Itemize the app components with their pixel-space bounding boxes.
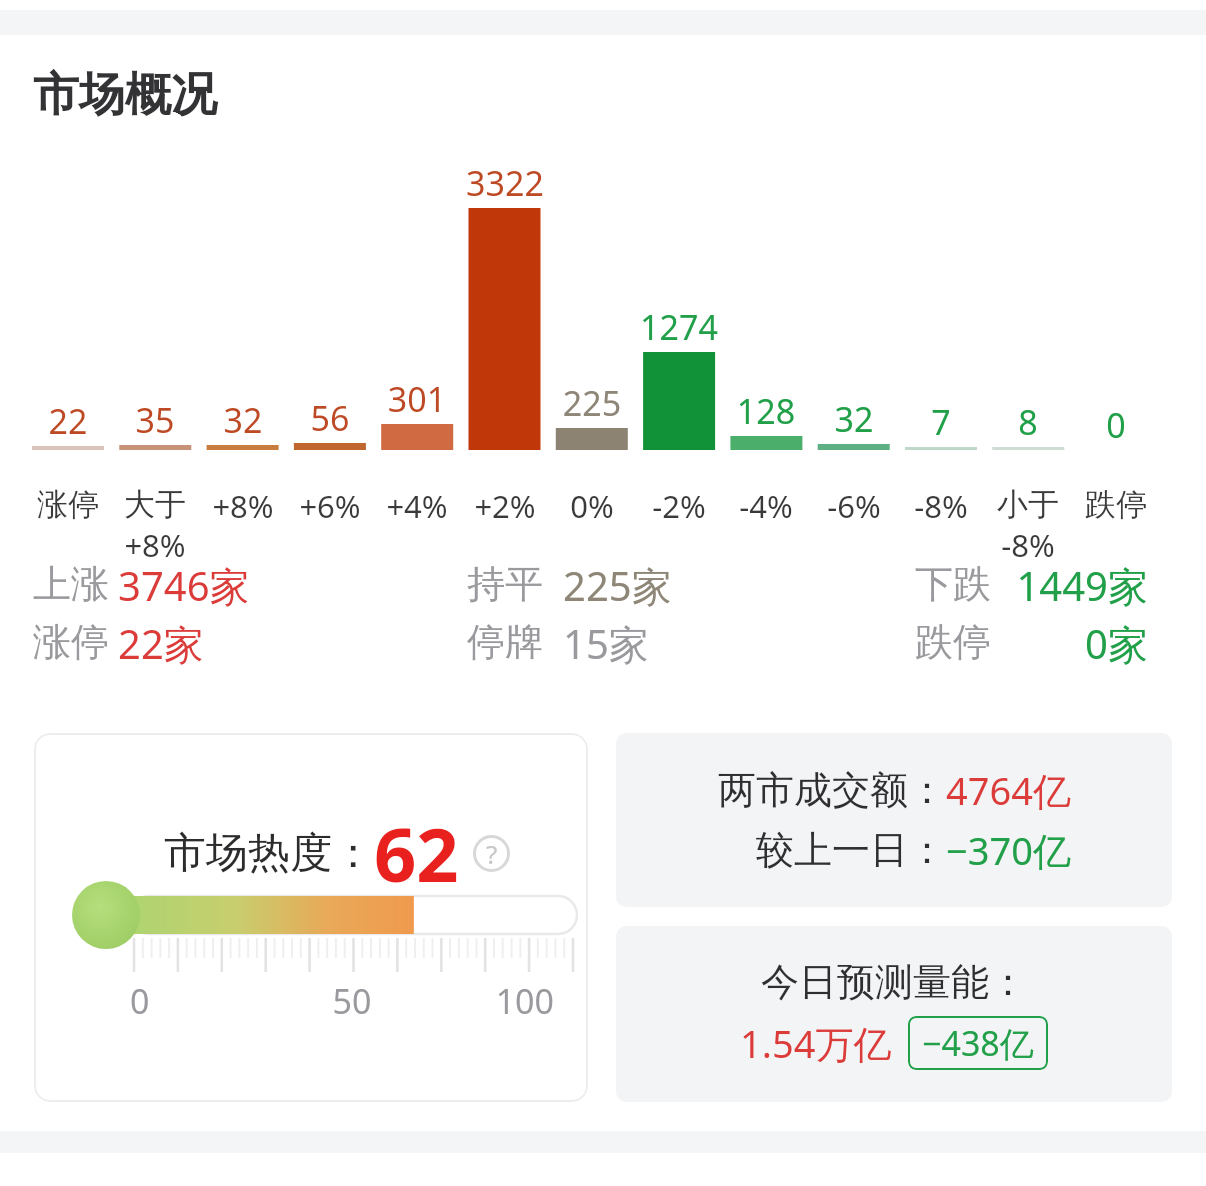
staticText: 市场概况 — [33, 66, 217, 124]
staticText: 0家 — [938, 616, 1148, 671]
staticText: 7 — [891, 399, 991, 445]
staticText: 下跌 — [915, 560, 991, 608]
staticText: 62 — [374, 803, 459, 904]
staticText: 15家 — [563, 616, 649, 671]
staticText: 0 — [130, 978, 150, 1024]
staticText: 22家 — [118, 616, 204, 671]
staticText: -8% — [1001, 524, 1055, 566]
staticText: 1274 — [629, 304, 729, 350]
staticText: 32 — [193, 397, 293, 443]
staticText: 225 — [542, 380, 642, 426]
staticText: 市场热度： — [164, 827, 374, 880]
staticText: 4764亿 — [946, 764, 1071, 816]
staticText: 100 — [474, 978, 554, 1024]
staticText: 301 — [367, 376, 467, 422]
staticText: 两市成交额： — [718, 766, 946, 814]
staticText: 1.54万亿 — [740, 1017, 892, 1069]
staticText: 8 — [978, 399, 1078, 445]
staticText: 3746家 — [118, 558, 250, 613]
staticText: 小于 — [997, 485, 1059, 524]
staticText: 停牌 — [467, 618, 543, 666]
staticText: +8% — [212, 485, 274, 527]
staticText: 0 — [1066, 402, 1166, 448]
staticText: 1449家 — [938, 558, 1148, 613]
staticText: 今日预测量能： — [761, 958, 1027, 1006]
staticText: 225家 — [563, 558, 672, 613]
staticText: +2% — [474, 485, 536, 527]
staticText: 128 — [716, 388, 816, 434]
staticText: 大于 — [124, 485, 186, 524]
staticText: −370亿 — [946, 824, 1071, 876]
staticText: 35 — [105, 397, 205, 443]
staticText: 0% — [570, 485, 614, 527]
staticText: 32 — [804, 396, 904, 442]
staticText: 跌停 — [1085, 485, 1147, 524]
button[interactable]: 两市成交额： — [616, 733, 1172, 907]
staticText: 涨停 — [37, 485, 99, 524]
staticText: 56 — [280, 395, 380, 441]
staticText: -4% — [739, 485, 793, 527]
staticText: 涨停 — [33, 618, 109, 666]
staticText: +6% — [299, 485, 361, 527]
staticText: 3322 — [455, 160, 555, 206]
staticText: ? — [486, 836, 498, 871]
staticText: 跌停 — [915, 618, 991, 666]
staticText: −438亿 — [922, 1020, 1034, 1066]
staticText: 50 — [317, 978, 387, 1024]
button[interactable]: 市场热度： — [34, 733, 588, 1102]
staticText: -8% — [914, 485, 968, 527]
staticText: 上涨 — [33, 560, 109, 608]
staticText: +4% — [386, 485, 448, 527]
button[interactable]: 说明 — [473, 835, 510, 872]
staticText: -6% — [827, 485, 881, 527]
staticText: 22 — [18, 398, 118, 444]
staticText: 较上一日： — [756, 826, 946, 874]
staticText: -2% — [652, 485, 706, 527]
staticText: 持平 — [467, 560, 543, 608]
button[interactable]: 今日预测量能： — [616, 926, 1172, 1102]
staticText: +8% — [124, 524, 186, 566]
